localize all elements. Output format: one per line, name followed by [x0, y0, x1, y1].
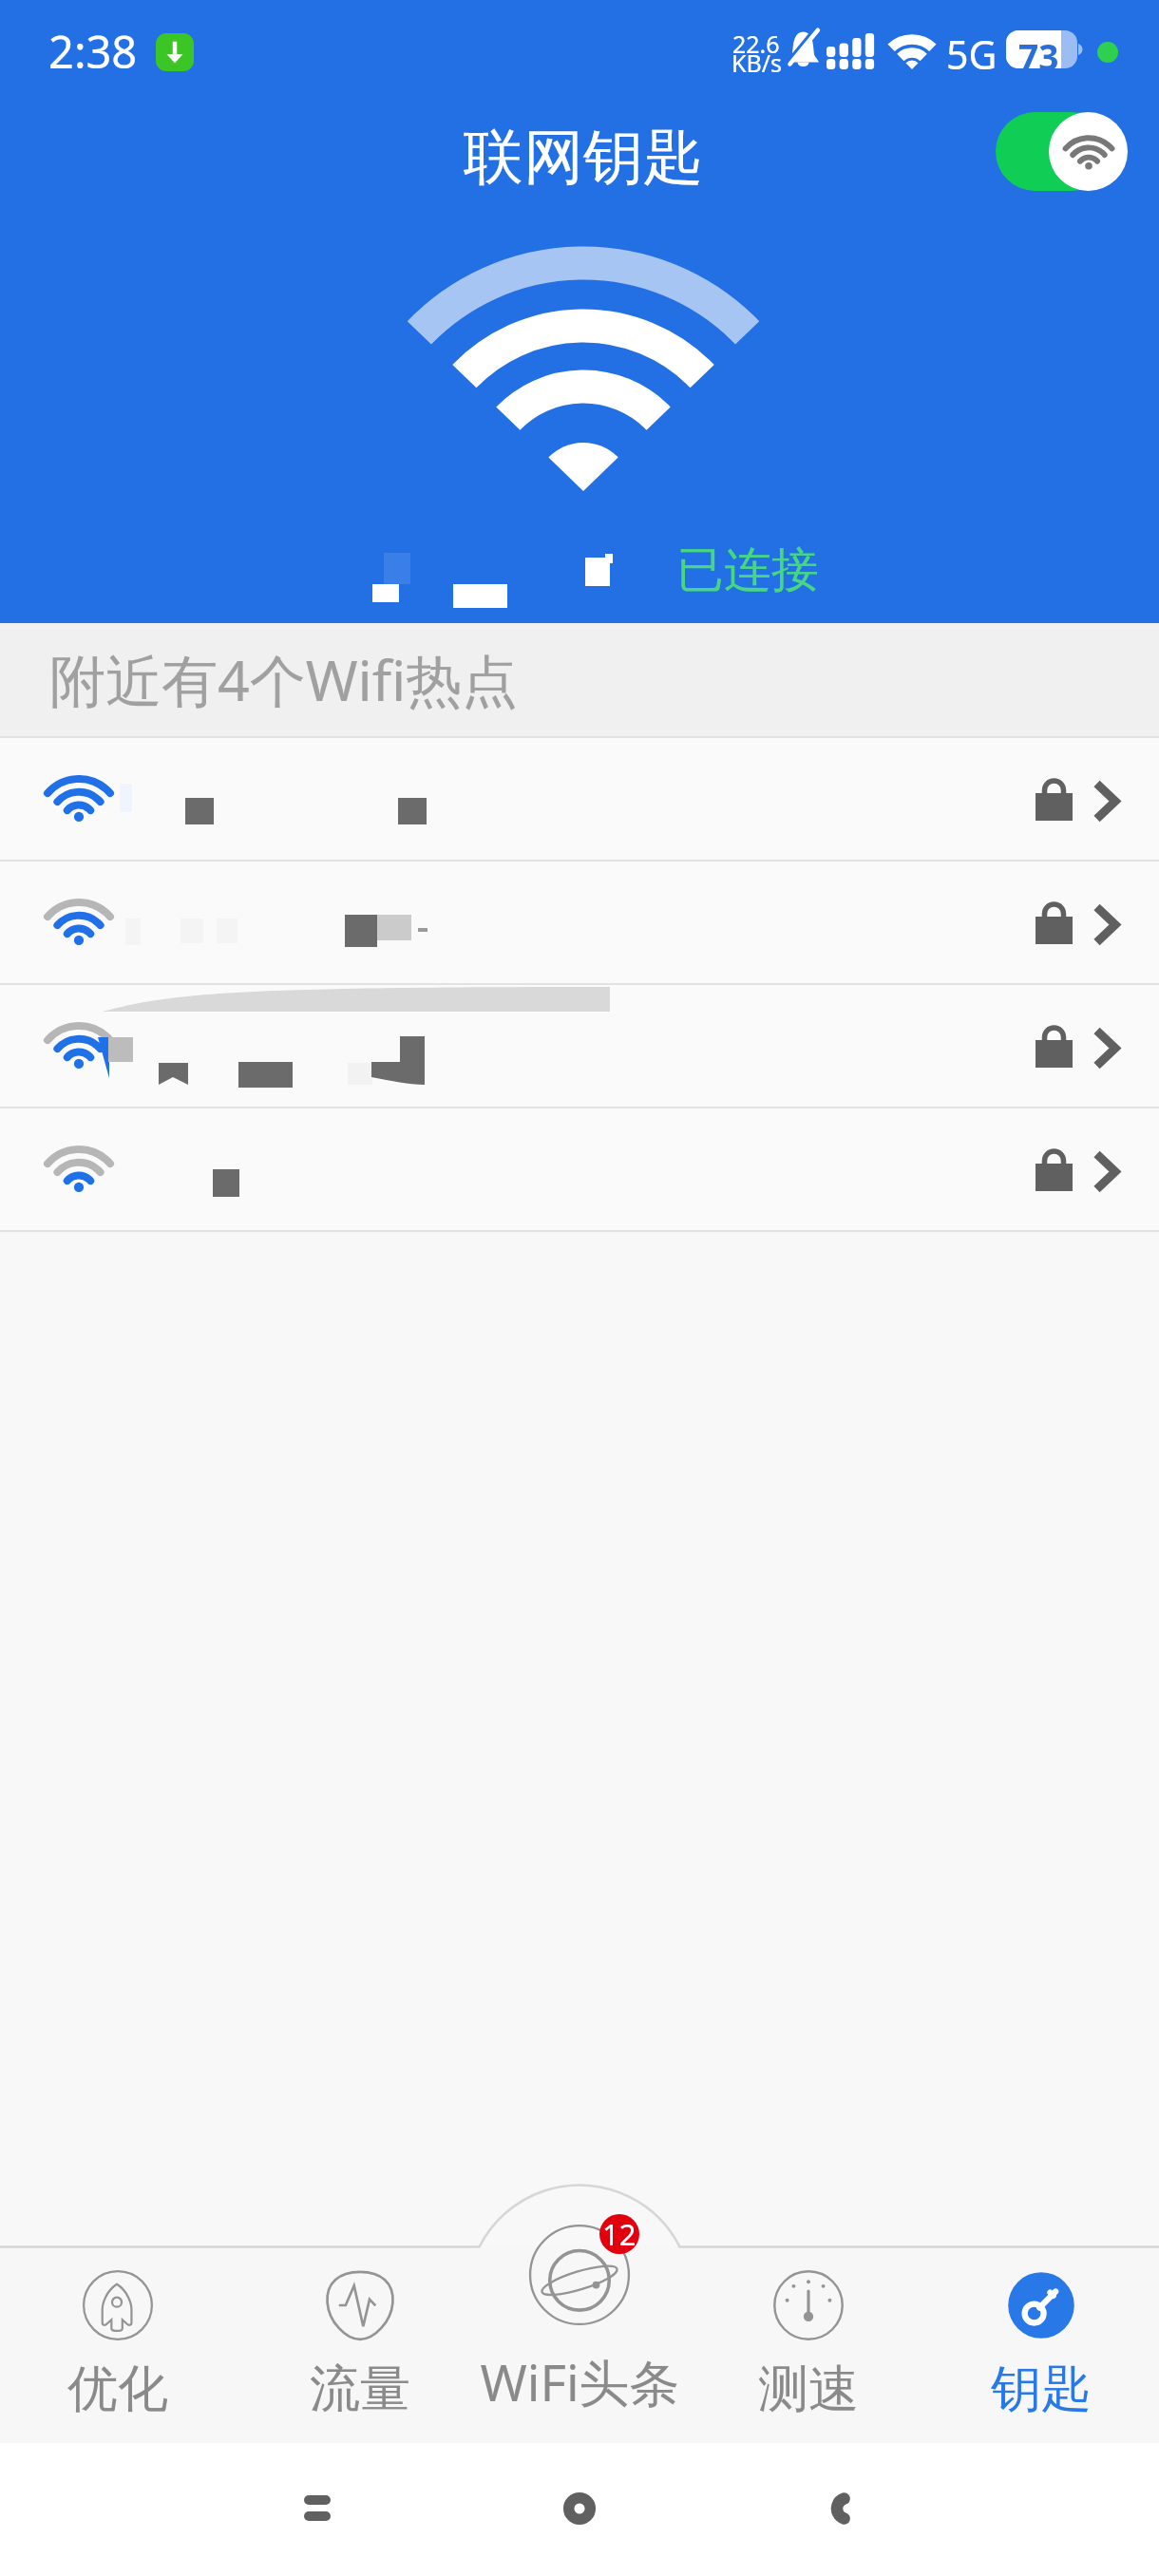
button[interactable]: 优化 [0, 2245, 232, 2443]
button[interactable]: Wi-Fi toggle [988, 106, 1134, 198]
staticText: 测速 [758, 2358, 859, 2421]
button[interactable]: Recents [304, 2495, 331, 2522]
button[interactable]: 流量 [232, 2245, 464, 2443]
staticText: 5G [946, 28, 997, 81]
button[interactable]: Wi-Fi network ${idx + 1}, secured [0, 983, 1159, 1107]
button[interactable]: Wi-Fi network ${idx + 1}, secured [0, 736, 1159, 860]
button[interactable]: Wi-Fi network ${idx + 1}, secured [0, 1107, 1159, 1230]
staticText: 流量 [310, 2358, 410, 2421]
staticText: 73 [1018, 32, 1059, 70]
button[interactable]: 钥匙 [927, 2245, 1159, 2443]
staticText: 联网钥匙 [464, 120, 703, 195]
button[interactable]: Back [825, 2491, 870, 2529]
button[interactable]: 测速 [695, 2245, 927, 2443]
staticText: 22.6 [732, 28, 780, 60]
staticText: KB/s [731, 47, 783, 79]
staticText: 附近有4个Wifi热点 [49, 641, 519, 718]
button[interactable]: Wi-Fi network ${idx + 1}, secured [0, 860, 1159, 983]
button[interactable]: Home [563, 2492, 596, 2525]
staticText: 优化 [67, 2358, 168, 2421]
staticText: WiFi头条 [480, 2347, 680, 2415]
staticText: 钥匙 [991, 2358, 1092, 2421]
staticText: 已连接 [676, 540, 819, 600]
staticText: 2:38 [48, 21, 138, 82]
button[interactable]: WiFi头条 [464, 2245, 695, 2443]
staticText: 12 [602, 2214, 636, 2254]
